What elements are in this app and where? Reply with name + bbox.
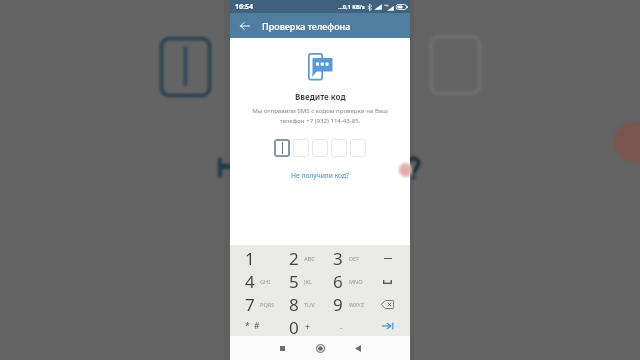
button[interactable] — [320, 293, 365, 316]
staticText: 16:54 — [235, 2, 253, 12]
button[interactable]: minus — [365, 247, 410, 270]
staticText: Введите код — [295, 91, 346, 102]
staticText: . — [340, 320, 343, 332]
button[interactable] — [230, 293, 275, 316]
button[interactable] — [230, 316, 275, 336]
staticText: 7 — [245, 293, 255, 316]
button[interactable] — [275, 247, 320, 270]
button[interactable] — [320, 247, 365, 270]
staticText: ...0,1 KB/s — [338, 3, 365, 11]
staticText: DEF — [349, 255, 360, 263]
staticText: JKL — [304, 278, 312, 286]
button[interactable] — [350, 139, 366, 157]
button[interactable]: Recents — [263, 337, 301, 359]
staticText: TUV — [304, 301, 315, 309]
staticText: 1 — [245, 247, 255, 270]
staticText: + — [305, 320, 311, 332]
button[interactable]: del — [365, 293, 410, 316]
staticText: 4 — [245, 270, 255, 293]
staticText: GHI — [260, 278, 271, 286]
button[interactable]: Home — [301, 337, 339, 359]
staticText: 2 — [289, 247, 299, 270]
button[interactable]: space — [365, 270, 410, 293]
staticText: MNO — [349, 278, 363, 286]
staticText: PQRS — [260, 301, 275, 309]
button[interactable] — [230, 247, 275, 270]
button[interactable] — [275, 270, 320, 293]
staticText: * # — [245, 320, 260, 332]
button[interactable] — [312, 139, 328, 157]
button[interactable]: Не получили код? — [285, 169, 355, 182]
staticText: 3 — [333, 247, 343, 270]
button[interactable] — [293, 139, 309, 157]
button[interactable]: next — [365, 316, 410, 336]
staticText: 6 — [333, 270, 343, 293]
staticText: ABC — [304, 255, 315, 263]
staticText: 0 — [289, 316, 299, 336]
staticText: Мы отправили SMS с кодом проверки на Ваш… — [252, 106, 388, 125]
button[interactable]: Back — [339, 337, 377, 359]
button[interactable] — [331, 139, 347, 157]
staticText: Проверка телефона — [262, 20, 351, 32]
button[interactable] — [275, 293, 320, 316]
staticText: Не получили код? — [291, 171, 349, 180]
button[interactable] — [275, 316, 320, 336]
staticText: 5 — [289, 270, 299, 293]
button[interactable] — [274, 139, 290, 157]
button[interactable] — [320, 270, 365, 293]
staticText: 8 — [289, 293, 299, 316]
button[interactable] — [230, 270, 275, 293]
staticText: WXYZ — [349, 301, 364, 309]
staticText: 9 — [333, 293, 343, 316]
button[interactable]: Back — [232, 13, 257, 38]
